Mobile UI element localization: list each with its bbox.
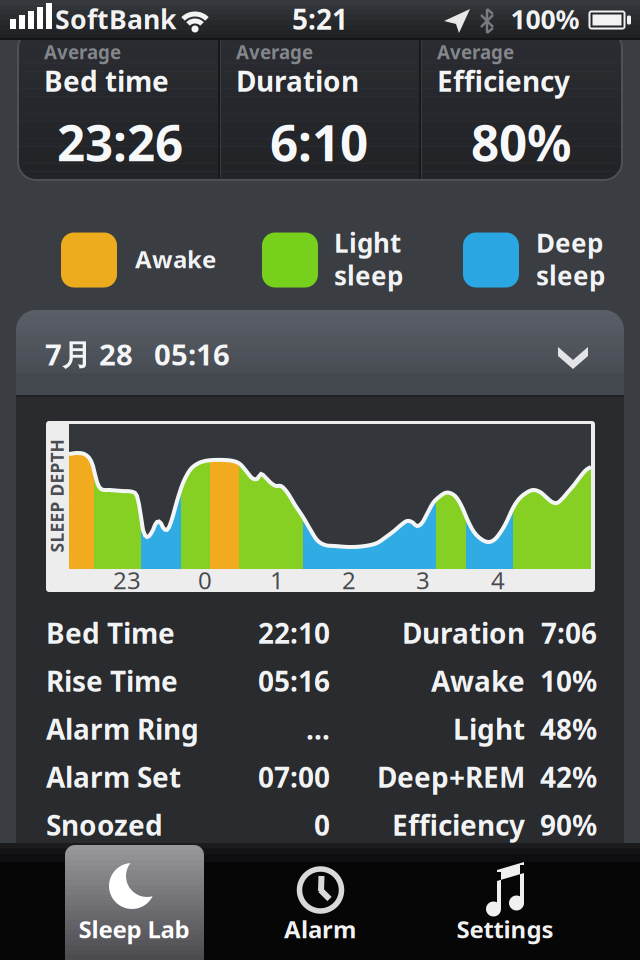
button[interactable]: Alarm: [0, 0, 640, 960]
staticText: 05:16: [154, 334, 230, 373]
staticText: 100%: [510, 1, 579, 37]
staticText: Sleep Lab: [78, 913, 189, 945]
staticText: Duration: [236, 62, 359, 100]
staticText: Average: [44, 40, 121, 64]
staticText: 23: [113, 564, 141, 596]
staticText: Average: [236, 40, 313, 64]
staticText: Efficiency: [437, 62, 570, 100]
staticText: 2: [342, 564, 356, 596]
staticText: 80%: [471, 109, 571, 175]
staticText: Duration: [402, 614, 525, 652]
staticText: Light: [453, 710, 525, 748]
staticText: Deep sleep: [536, 226, 605, 292]
staticText: 10%: [540, 662, 597, 700]
staticText: SoftBank: [55, 1, 177, 37]
staticText: Efficiency: [392, 806, 525, 844]
staticText: Alarm: [284, 913, 356, 945]
staticText: Settings: [456, 913, 553, 945]
staticText: Deep+REM: [377, 758, 525, 796]
staticText: Alarm Set: [46, 758, 181, 796]
staticText: Alarm Ring: [46, 710, 199, 748]
staticText: 3: [416, 564, 430, 596]
staticText: Awake: [431, 662, 525, 700]
staticText: 05:16: [258, 662, 330, 700]
staticText: 48%: [540, 710, 597, 748]
staticText: 42%: [540, 758, 597, 796]
staticText: Snoozed: [46, 806, 163, 844]
staticText: 7:06: [541, 614, 597, 652]
button[interactable]: Settings: [0, 0, 640, 960]
staticText: 0: [198, 564, 212, 596]
staticText: 6:10: [270, 109, 368, 175]
staticText: 1: [270, 564, 284, 596]
staticText: 23:26: [57, 109, 183, 175]
button[interactable]: 7月 28: [0, 0, 640, 960]
staticText: 5:21: [292, 0, 348, 38]
staticText: 4: [491, 564, 505, 596]
staticText: Rise Time: [46, 662, 178, 700]
staticText: 90%: [540, 806, 597, 844]
button[interactable]: Sleep Lab: [0, 0, 640, 960]
staticText: 22:10: [258, 614, 330, 652]
staticText: ...: [306, 710, 330, 748]
staticText: Average: [437, 40, 514, 64]
staticText: 07:00: [258, 758, 330, 796]
staticText: Awake: [135, 243, 216, 275]
staticText: Light sleep: [334, 226, 403, 292]
staticText: Bed Time: [46, 614, 175, 652]
staticText: SLEEP DEPTH: [0, 484, 113, 507]
staticText: 0: [314, 806, 330, 844]
staticText: 7月 28: [45, 334, 133, 373]
staticText: Bed time: [44, 62, 169, 100]
